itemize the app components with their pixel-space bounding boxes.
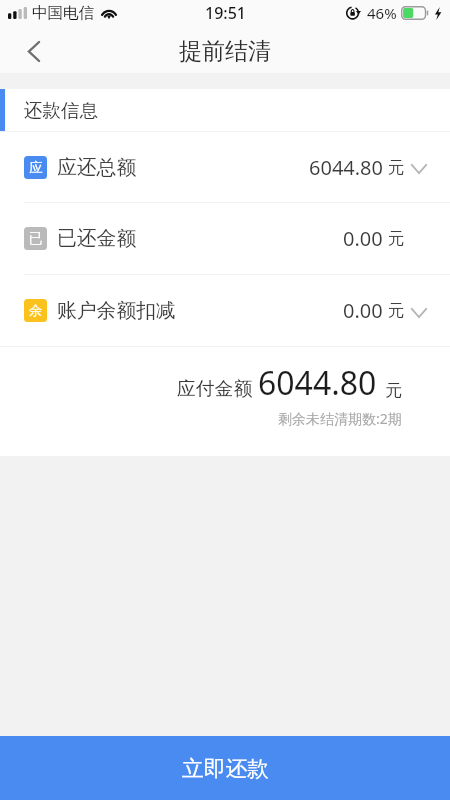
staticText: 还款信息 [24,99,98,122]
button[interactable]: 应 [0,132,450,202]
staticText: 已 [29,230,43,247]
staticText: 元 [388,157,405,178]
staticText: 应 [29,159,43,176]
staticText: 应还总额 [57,155,137,180]
staticText: 0.00 [343,297,383,324]
staticText: 中国电信 [32,3,94,23]
staticText: 元 [388,228,405,249]
staticText: 立即还款 [182,755,269,782]
staticText: 剩余未结清期数:2期 [278,409,402,428]
staticText: 6044.80 [258,361,377,405]
staticText: 已还金额 [57,226,137,251]
staticText: 账户余额扣减 [57,298,176,323]
staticText: 提前结清 [179,37,271,66]
staticText: 6044.80 [309,154,383,181]
button[interactable]: 立即还款 [0,736,450,800]
button[interactable]: 已 [0,203,450,274]
staticText: 应付金额 [177,377,253,401]
staticText: 19:51 [205,2,246,24]
staticText: 元 [388,300,405,321]
staticText: 余 [29,302,43,319]
staticText: 46% [367,3,397,23]
button[interactable]: 余 [0,275,450,346]
staticText: 0.00 [343,225,383,252]
staticText: 元 [385,380,402,401]
button[interactable]: Back [0,29,68,73]
